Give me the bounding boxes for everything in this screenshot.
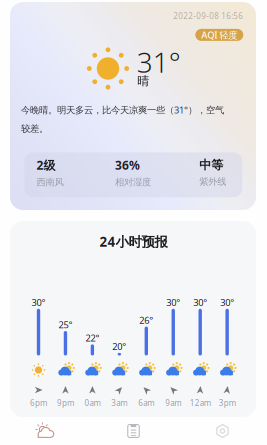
staticText: 3am	[111, 398, 127, 408]
staticText: 6pm	[30, 398, 47, 408]
button[interactable]: 生活指数	[89, 417, 178, 445]
staticText: 6am	[138, 398, 154, 408]
staticText: AQI 轻度	[201, 29, 237, 41]
staticText: 今晚晴。明天多云，比今天凉爽一些（31°），空气 较差。	[21, 104, 224, 134]
staticText: 中等	[199, 158, 223, 172]
staticText: 相对湿度	[115, 176, 151, 188]
staticText: 30°	[193, 296, 207, 308]
staticText: 2级	[36, 157, 55, 173]
staticText: 3pm	[219, 398, 236, 408]
staticText: 2022-09-08 16:56	[173, 11, 243, 21]
staticText: 24小时预报	[99, 233, 167, 250]
button[interactable]: 天气	[0, 417, 89, 445]
staticText: 12am	[190, 398, 211, 408]
staticText: 30°	[220, 296, 234, 308]
staticText: 20°	[112, 340, 126, 353]
staticText: 26°	[139, 314, 153, 326]
staticText: 西南风	[36, 176, 63, 188]
staticText: 0am	[84, 398, 100, 408]
staticText: 31°	[137, 43, 181, 81]
staticText: 晴	[137, 74, 149, 88]
button[interactable]: 设置	[178, 417, 267, 445]
staticText: 紫外线	[199, 176, 226, 187]
staticText: 25°	[58, 318, 72, 331]
staticText: 30°	[166, 296, 180, 308]
staticText: 22°	[85, 332, 99, 344]
staticText: 36%	[115, 157, 140, 173]
staticText: 9am	[165, 398, 181, 408]
staticText: 9pm	[57, 398, 74, 408]
staticText: 30°	[31, 296, 45, 308]
